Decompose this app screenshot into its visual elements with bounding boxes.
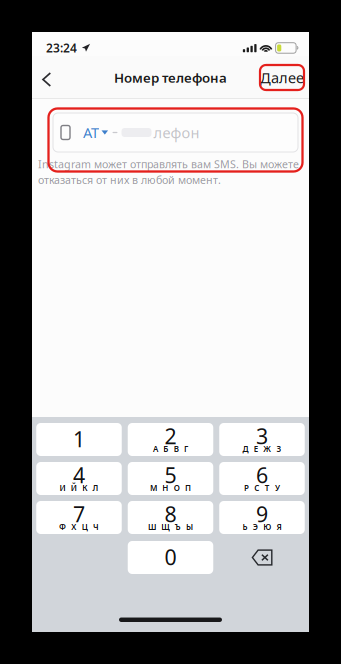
staticText: Ф — [59, 522, 66, 532]
staticText: Щ — [161, 522, 169, 532]
button[interactable]: 2 — [128, 423, 213, 456]
staticText: Т — [265, 483, 270, 493]
staticText: О — [174, 483, 180, 493]
staticText: Я — [277, 522, 282, 532]
staticText: Е — [254, 444, 258, 454]
staticText: 1 — [73, 425, 85, 453]
button[interactable]: 4 — [36, 462, 122, 495]
staticText: Ь — [242, 522, 247, 532]
staticText: Ъ — [175, 522, 181, 532]
staticText: 23:24 — [46, 40, 77, 56]
staticText: А — [153, 444, 158, 454]
staticText: Н — [162, 483, 168, 493]
staticText: Instagram может отправлять вам SMS. Вы м… — [38, 157, 299, 171]
staticText: З — [277, 444, 282, 454]
staticText: И — [59, 483, 65, 493]
staticText: Ю — [263, 522, 271, 532]
staticText: 7 — [73, 500, 85, 528]
staticText: 3 — [256, 422, 268, 450]
staticText: 0 — [164, 543, 176, 571]
button[interactable]: 9 — [219, 501, 305, 534]
staticText: Й — [71, 483, 77, 493]
staticText: 8 — [164, 500, 176, 528]
staticText: 9 — [256, 500, 268, 528]
staticText: 2 — [164, 422, 176, 450]
staticText: Ж — [263, 444, 271, 454]
staticText: С — [254, 483, 259, 493]
staticText: Ы — [186, 522, 193, 532]
staticText: 4 — [73, 461, 85, 489]
button[interactable]: 1 — [36, 423, 122, 456]
staticText: отказаться от них в любой момент. — [38, 173, 221, 187]
button[interactable]: 0 — [128, 541, 213, 574]
staticText: Б — [163, 444, 168, 454]
button[interactable]: Код страны AT — [70, 123, 108, 142]
staticText: Г — [184, 444, 188, 454]
staticText: Ш — [148, 522, 156, 532]
button[interactable]: 7 — [36, 501, 122, 534]
staticText: Х — [71, 522, 76, 532]
staticText: В — [174, 444, 179, 454]
staticText: Ц — [82, 522, 88, 532]
staticText: 5 — [164, 461, 176, 489]
button[interactable]: Далее — [260, 65, 304, 90]
staticText: П — [185, 483, 191, 493]
staticText: AT — [83, 123, 99, 142]
staticText: Л — [93, 483, 99, 493]
staticText: М — [150, 483, 157, 493]
staticText: У — [275, 483, 280, 493]
button[interactable]: 3 — [219, 423, 305, 456]
staticText: Ч — [93, 522, 99, 532]
button[interactable]: 5 — [128, 462, 213, 495]
staticText: Д — [242, 444, 248, 454]
button[interactable]: 6 — [219, 462, 305, 495]
staticText: лефон — [153, 123, 199, 142]
staticText: К — [82, 483, 87, 493]
staticText: Р — [244, 483, 249, 493]
button[interactable]: Назад — [42, 56, 68, 98]
staticText: Э — [253, 522, 258, 532]
button[interactable]: 8 — [128, 501, 213, 534]
button[interactable]: Удалить — [219, 541, 305, 574]
staticText: Далее — [260, 68, 304, 87]
staticText: 6 — [256, 461, 268, 489]
staticText: Номер телефона — [114, 69, 227, 86]
